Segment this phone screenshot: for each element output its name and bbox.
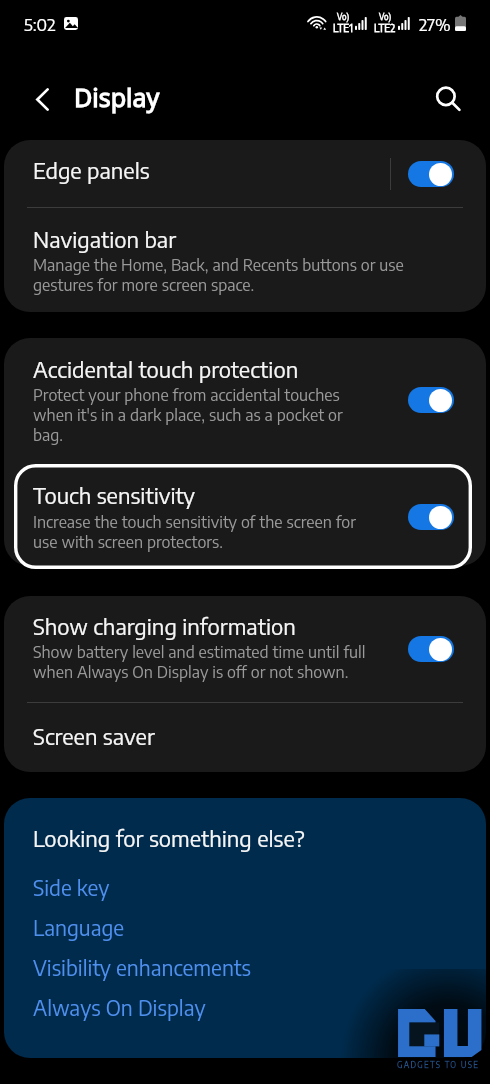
staticText: Vo) (337, 12, 350, 22)
staticText: 27% (419, 13, 451, 34)
button[interactable]: Search (428, 79, 468, 119)
button[interactable]: Side key (33, 868, 486, 908)
button[interactable]: Edge panels (408, 161, 454, 187)
button[interactable]: Accidental touch protection (4, 338, 486, 445)
button[interactable]: Always On Display (33, 988, 486, 1028)
staticText: Edge panels (33, 156, 150, 184)
staticText: Navigation bar (33, 225, 177, 253)
staticText: Protect your phone from accidental touch… (33, 385, 373, 445)
staticText: 5:02 (24, 13, 56, 34)
staticText: Language (33, 914, 125, 940)
button[interactable]: Edge panels (4, 140, 486, 207)
button[interactable]: Screen saver (4, 703, 486, 772)
staticText: LTE1 (333, 22, 353, 34)
button[interactable]: Navigation bar (4, 208, 486, 312)
staticText: Screen saver (33, 722, 155, 750)
staticText: Display (74, 80, 160, 114)
button[interactable]: Show charging information (408, 636, 454, 662)
staticText: Show charging information (33, 612, 296, 640)
staticText: Accidental touch protection (33, 355, 299, 383)
staticText: Looking for something else? (33, 824, 305, 852)
button[interactable]: Navigate up (25, 82, 59, 116)
button[interactable]: Accidental touch protection (408, 387, 454, 413)
staticText: Side key (33, 874, 110, 900)
staticText: GADGETS TO USE (397, 1060, 480, 1070)
button[interactable]: Touch sensitivity (408, 504, 454, 530)
staticText: Touch sensitivity (33, 481, 195, 509)
staticText: Vo) (379, 12, 392, 22)
staticText: Increase the touch sensitivity of the sc… (33, 512, 373, 552)
button[interactable]: Show charging information (4, 596, 486, 702)
staticText: Visibility enhancements (33, 954, 251, 980)
button[interactable]: Visibility enhancements (33, 948, 486, 988)
button[interactable]: Language (33, 908, 486, 948)
button[interactable]: Touch sensitivity (4, 481, 486, 566)
staticText: Show battery level and estimated time un… (33, 642, 373, 682)
staticText: Manage the Home, Back, and Recents butto… (33, 255, 418, 295)
staticText: Always On Display (33, 994, 206, 1020)
staticText: LTE2 (374, 22, 396, 34)
